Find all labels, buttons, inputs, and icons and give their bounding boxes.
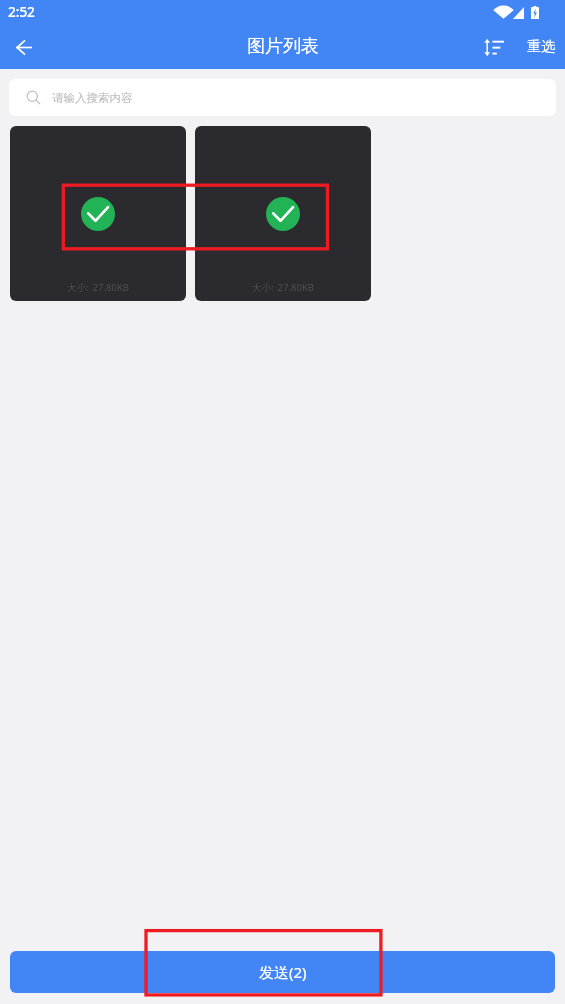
staticText: 大小: 27.80KB: [252, 281, 314, 294]
button[interactable]: 发送(2): [10, 951, 555, 993]
staticText: 图片列表: [247, 35, 319, 58]
staticText: 2:52: [8, 3, 35, 21]
button[interactable]: 重选: [517, 32, 565, 62]
button[interactable]: 大小: 27.80KB: [10, 126, 186, 301]
staticText: 大小: 27.80KB: [67, 281, 129, 294]
button[interactable]: Sort: [470, 27, 517, 67]
button[interactable]: 大小: 27.80KB: [195, 126, 371, 301]
staticText: 重选: [527, 38, 555, 56]
staticText: 发送(2): [259, 962, 307, 982]
button[interactable]: Back: [8, 31, 40, 63]
staticText: 请输入搜索内容: [52, 91, 133, 105]
button[interactable]: 请输入搜索内容: [9, 79, 556, 116]
